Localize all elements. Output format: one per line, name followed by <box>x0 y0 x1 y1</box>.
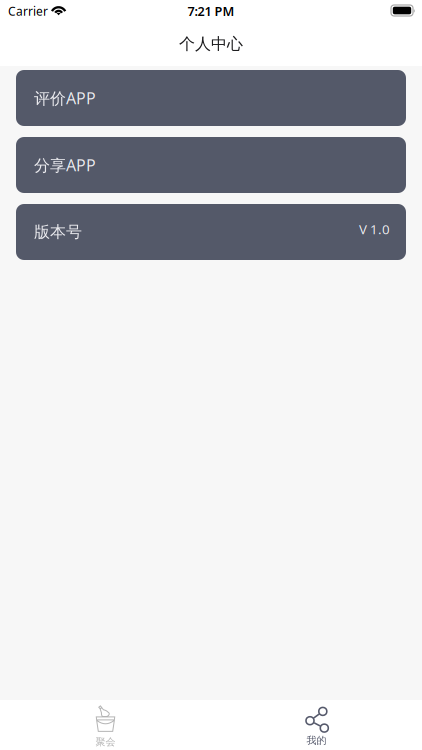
staticText: 分享APP <box>34 154 96 176</box>
button[interactable]: 评价APP <box>16 70 406 126</box>
button[interactable]: 我的 <box>211 700 422 750</box>
staticText: 个人中心 <box>179 34 243 54</box>
staticText: V 1.0 <box>359 220 390 238</box>
staticText: 聚会 <box>95 735 115 748</box>
staticText: 7:21 PM <box>187 2 234 20</box>
staticText: 版本号 <box>34 222 82 242</box>
staticText: Carrier <box>8 3 48 19</box>
button[interactable]: 分享APP <box>16 137 406 193</box>
staticText: 我的 <box>306 734 326 747</box>
button[interactable]: 版本号 <box>16 204 406 260</box>
staticText: 评价APP <box>34 87 96 109</box>
button[interactable]: 聚会 <box>0 700 211 750</box>
